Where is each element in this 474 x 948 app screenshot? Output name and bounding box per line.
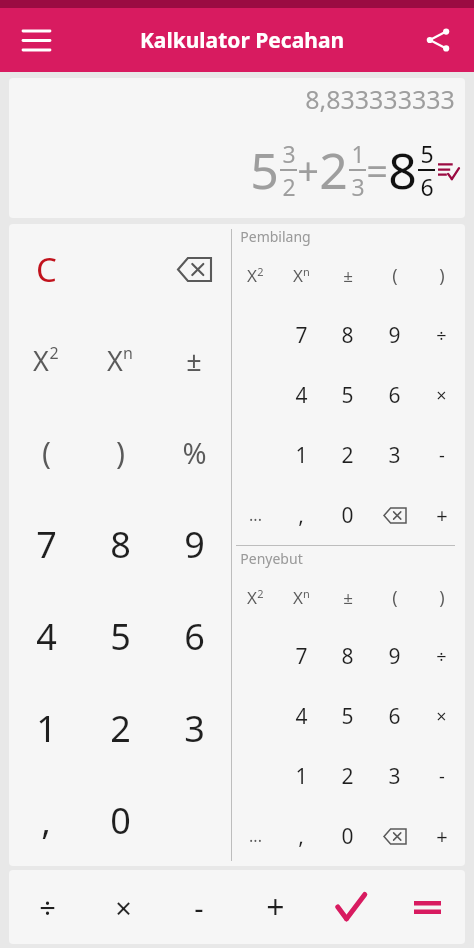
button[interactable]: 5 — [324, 686, 371, 746]
button[interactable]: 4 — [278, 365, 324, 425]
button[interactable]: Backspace — [371, 806, 418, 866]
button[interactable]: 0 — [324, 806, 371, 866]
button[interactable]: ÷ — [9, 870, 85, 944]
staticText: 6 — [184, 612, 205, 661]
button[interactable]: 6 — [157, 590, 231, 682]
button[interactable]: 2 — [324, 746, 371, 806]
button[interactable]: 3 — [371, 425, 418, 485]
staticText: 1 — [36, 704, 57, 753]
staticText: , — [41, 796, 51, 845]
button[interactable]: - — [418, 425, 465, 485]
button[interactable]: 3 — [157, 682, 231, 774]
button[interactable]: 4 — [9, 590, 83, 682]
staticText: Pembilang — [240, 227, 311, 246]
button[interactable]: ... — [232, 485, 278, 545]
button[interactable]: 9 — [371, 305, 418, 365]
button[interactable]: × — [418, 686, 465, 746]
staticText: , — [298, 822, 304, 851]
button[interactable]: 2 — [324, 425, 371, 485]
button[interactable]: X — [278, 246, 324, 305]
button[interactable]: + — [237, 870, 313, 944]
button[interactable]: ) — [83, 406, 157, 498]
staticText: , — [298, 501, 304, 530]
button[interactable]: 8 — [324, 627, 371, 686]
staticText: 9 — [388, 642, 401, 671]
staticText: C — [36, 247, 57, 292]
button[interactable]: - — [418, 746, 465, 806]
staticText: × — [115, 888, 132, 927]
button[interactable]: 1 — [278, 746, 324, 806]
staticText: X — [33, 342, 49, 379]
button[interactable]: % — [157, 406, 231, 498]
button[interactable]: Menu — [12, 16, 60, 64]
button[interactable]: 7 — [9, 498, 83, 590]
button[interactable]: ÷ — [418, 305, 465, 365]
button[interactable]: ± — [324, 246, 371, 305]
button[interactable]: 7 — [278, 627, 324, 686]
staticText: 4 — [295, 381, 308, 410]
staticText: × — [436, 704, 447, 729]
button[interactable]: 1 — [9, 682, 83, 774]
staticText: 2 — [319, 136, 348, 204]
button[interactable]: Equals — [389, 870, 465, 944]
staticText: 3 — [351, 171, 365, 202]
button[interactable]: 9 — [371, 627, 418, 686]
button[interactable]: Backspace — [157, 224, 231, 315]
button[interactable]: , — [278, 806, 324, 866]
button[interactable]: 8 — [83, 498, 157, 590]
button[interactable]: 1 — [278, 425, 324, 485]
button[interactable]: X — [232, 568, 278, 627]
button[interactable]: 8,833333333 — [9, 78, 465, 218]
button[interactable]: ) — [418, 246, 465, 305]
button[interactable]: 6 — [371, 686, 418, 746]
button[interactable]: 7 — [278, 305, 324, 365]
button[interactable]: X — [278, 568, 324, 627]
button[interactable]: 5 — [324, 365, 371, 425]
staticText: 3 — [388, 441, 401, 470]
button[interactable]: ... — [232, 806, 278, 866]
button[interactable]: Confirm — [313, 870, 389, 944]
button[interactable]: 9 — [157, 498, 231, 590]
button[interactable]: X — [232, 246, 278, 305]
button[interactable]: ± — [324, 568, 371, 627]
button[interactable]: × — [85, 870, 161, 944]
button[interactable]: ) — [418, 568, 465, 627]
button[interactable]: 6 — [371, 365, 418, 425]
button[interactable]: X — [83, 315, 157, 406]
staticText: 2 — [282, 171, 296, 202]
staticText: X — [293, 264, 303, 287]
button[interactable]: , — [9, 774, 83, 866]
button[interactable]: ( — [371, 568, 418, 627]
button[interactable]: 0 — [324, 485, 371, 545]
button[interactable]: × — [418, 365, 465, 425]
staticText: 5 — [341, 381, 354, 410]
staticText: ) — [439, 263, 445, 288]
button[interactable]: Share — [414, 16, 462, 64]
button[interactable]: ÷ — [418, 627, 465, 686]
staticText: ... — [249, 825, 262, 847]
button[interactable]: - — [161, 870, 237, 944]
button[interactable]: C — [9, 224, 83, 315]
button[interactable]: Backspace — [371, 485, 418, 545]
button[interactable]: 5 — [83, 590, 157, 682]
staticText: 8 — [388, 136, 417, 204]
button[interactable]: ( — [371, 246, 418, 305]
staticText: 6 — [388, 702, 401, 731]
button[interactable]: X — [9, 315, 83, 406]
staticText: 2 — [257, 264, 264, 279]
button[interactable]: 0 — [83, 774, 157, 866]
button[interactable]: ( — [9, 406, 83, 498]
staticText: n — [303, 264, 310, 279]
staticText: ) — [439, 585, 445, 610]
staticText: ± — [343, 264, 353, 287]
button[interactable]: 2 — [83, 682, 157, 774]
button[interactable]: 4 — [278, 686, 324, 746]
button[interactable]: + — [418, 485, 465, 545]
button[interactable]: + — [418, 806, 465, 866]
button[interactable]: 3 — [371, 746, 418, 806]
staticText: n — [123, 342, 133, 364]
staticText: X — [247, 586, 257, 609]
button[interactable]: 8 — [324, 305, 371, 365]
button[interactable]: ± — [157, 315, 231, 406]
button[interactable]: , — [278, 485, 324, 545]
